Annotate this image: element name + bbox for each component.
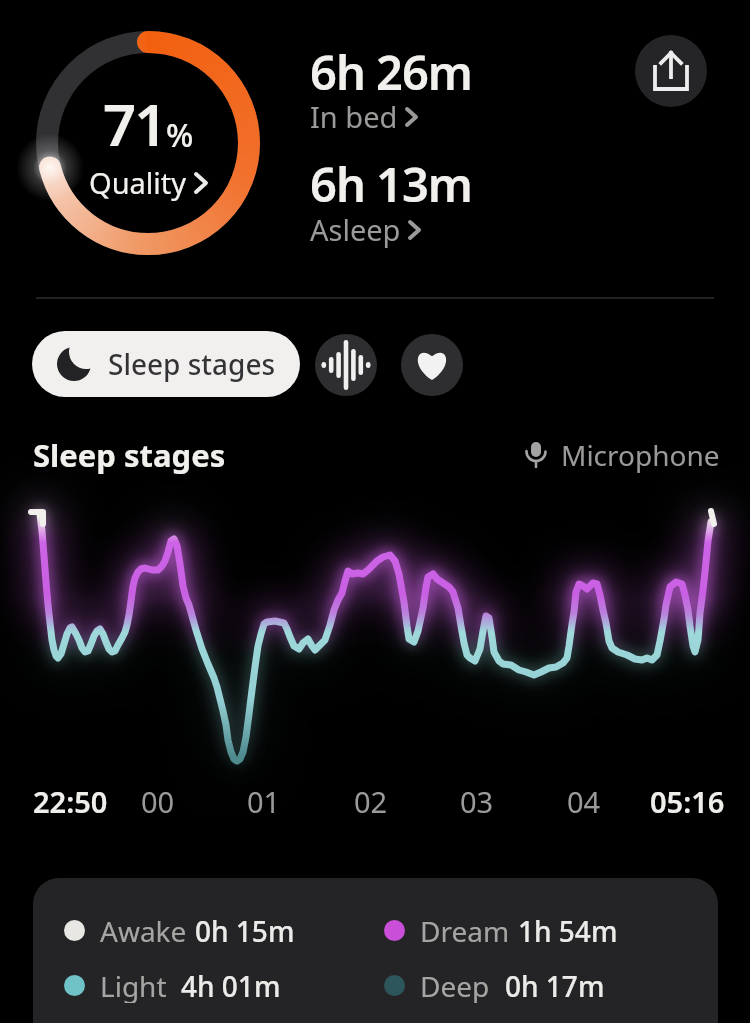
button[interactable]: Microphone [521,436,720,474]
staticText: Quality [89,163,187,202]
staticText: 4h 01m [181,967,281,1003]
staticText: 05:16 [650,782,725,821]
staticText: Deep [420,967,490,1003]
staticText: 03 [460,782,494,821]
staticText: 0h 15m [195,912,295,948]
staticText: Awake [100,912,187,948]
button[interactable]: Light [64,967,354,1003]
staticText: 04 [567,782,601,821]
staticText: Light [100,967,167,1003]
button[interactable] [635,35,707,107]
staticText: 1h 54m [518,912,618,948]
button[interactable] [315,334,377,396]
button[interactable]: Sleep stages [32,331,300,397]
staticText: 6h 13m [310,152,472,216]
button[interactable]: Deep [384,967,674,1003]
staticText: 02 [354,782,388,821]
staticText: Dream [420,912,510,948]
staticText: In bed [310,97,398,136]
staticText: Sleep stages [108,345,276,383]
button[interactable]: Awake [64,912,354,948]
button[interactable] [401,334,463,396]
staticText: Asleep [310,210,401,249]
staticText: % [166,113,194,157]
staticText: 00 [141,782,175,821]
staticText: 22:50 [33,782,108,821]
staticText: Microphone [561,436,720,474]
button[interactable]: In bed [310,97,417,136]
staticText: 0h 17m [505,967,605,1003]
staticText: 6h 26m [310,40,472,104]
button[interactable]: 71 [36,31,260,255]
staticText: 71 [103,84,166,163]
staticText: Sleep stages [33,434,226,476]
button[interactable]: Asleep [310,210,420,249]
staticText: 01 [247,782,281,821]
button[interactable]: Dream [384,912,674,948]
